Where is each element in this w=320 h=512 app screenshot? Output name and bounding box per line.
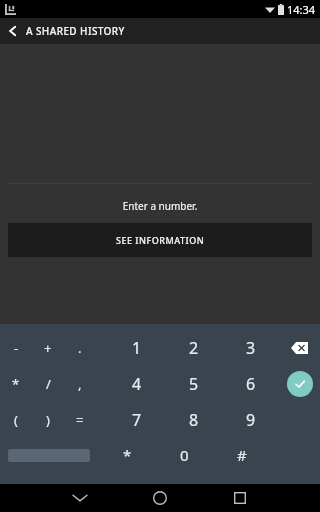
staticText: SEE INFORMATION [116,234,205,246]
button[interactable]: 7 [109,402,165,438]
button[interactable]: SEE INFORMATION [8,223,312,257]
staticText: . [78,339,82,357]
staticText: 9 [246,409,256,431]
button[interactable]: 3 [222,330,279,366]
staticText: + [44,339,52,357]
staticText: * [12,375,20,393]
button[interactable]: = [64,402,96,438]
staticText: 0 [180,445,189,465]
staticText: 8 [189,409,199,431]
button[interactable]: / [32,366,64,402]
button[interactable]: + [32,330,64,366]
button[interactable]: 9 [222,402,279,438]
staticText: 5 [189,373,199,395]
button[interactable]: Space [0,438,98,472]
button[interactable]: 4 [109,366,165,402]
staticText: , [78,375,82,393]
button[interactable]: . [64,330,96,366]
button[interactable]: 5 [165,366,222,402]
staticText: 2 [189,337,199,359]
staticText: 1 [132,337,142,359]
button[interactable]: Recent apps [220,484,260,512]
staticText: # [237,445,247,465]
staticText: A SHARED HISTORY [26,24,125,38]
button[interactable]: ) [32,402,64,438]
button[interactable]: Navigate up [0,18,26,44]
button[interactable]: ( [0,402,32,438]
button[interactable]: Home [140,484,180,512]
button[interactable]: 6 [222,366,279,402]
button[interactable]: , [64,366,96,402]
button[interactable]: - [0,330,32,366]
staticText: 4 [132,373,142,395]
staticText: = [76,411,84,429]
staticText: 7 [132,409,142,431]
button[interactable]: Enter [279,366,320,402]
staticText: ) [46,411,50,429]
staticText: ( [14,411,18,429]
staticText: 6 [246,373,256,395]
button[interactable]: 2 [165,330,222,366]
button[interactable]: 8 [165,402,222,438]
staticText: Enter a number. [0,199,320,213]
button[interactable]: 1 [109,330,165,366]
button[interactable]: # [213,438,270,472]
staticText: 14:34 [287,2,316,17]
button[interactable]: * [98,438,156,472]
staticText: * [123,445,132,465]
button[interactable]: * [0,366,32,402]
button[interactable]: Hide keyboard [60,484,100,512]
staticText: / [46,375,51,393]
button[interactable]: Backspace [279,330,320,366]
button[interactable]: 0 [156,438,213,472]
staticText: 3 [246,337,256,359]
staticText: - [14,339,19,357]
